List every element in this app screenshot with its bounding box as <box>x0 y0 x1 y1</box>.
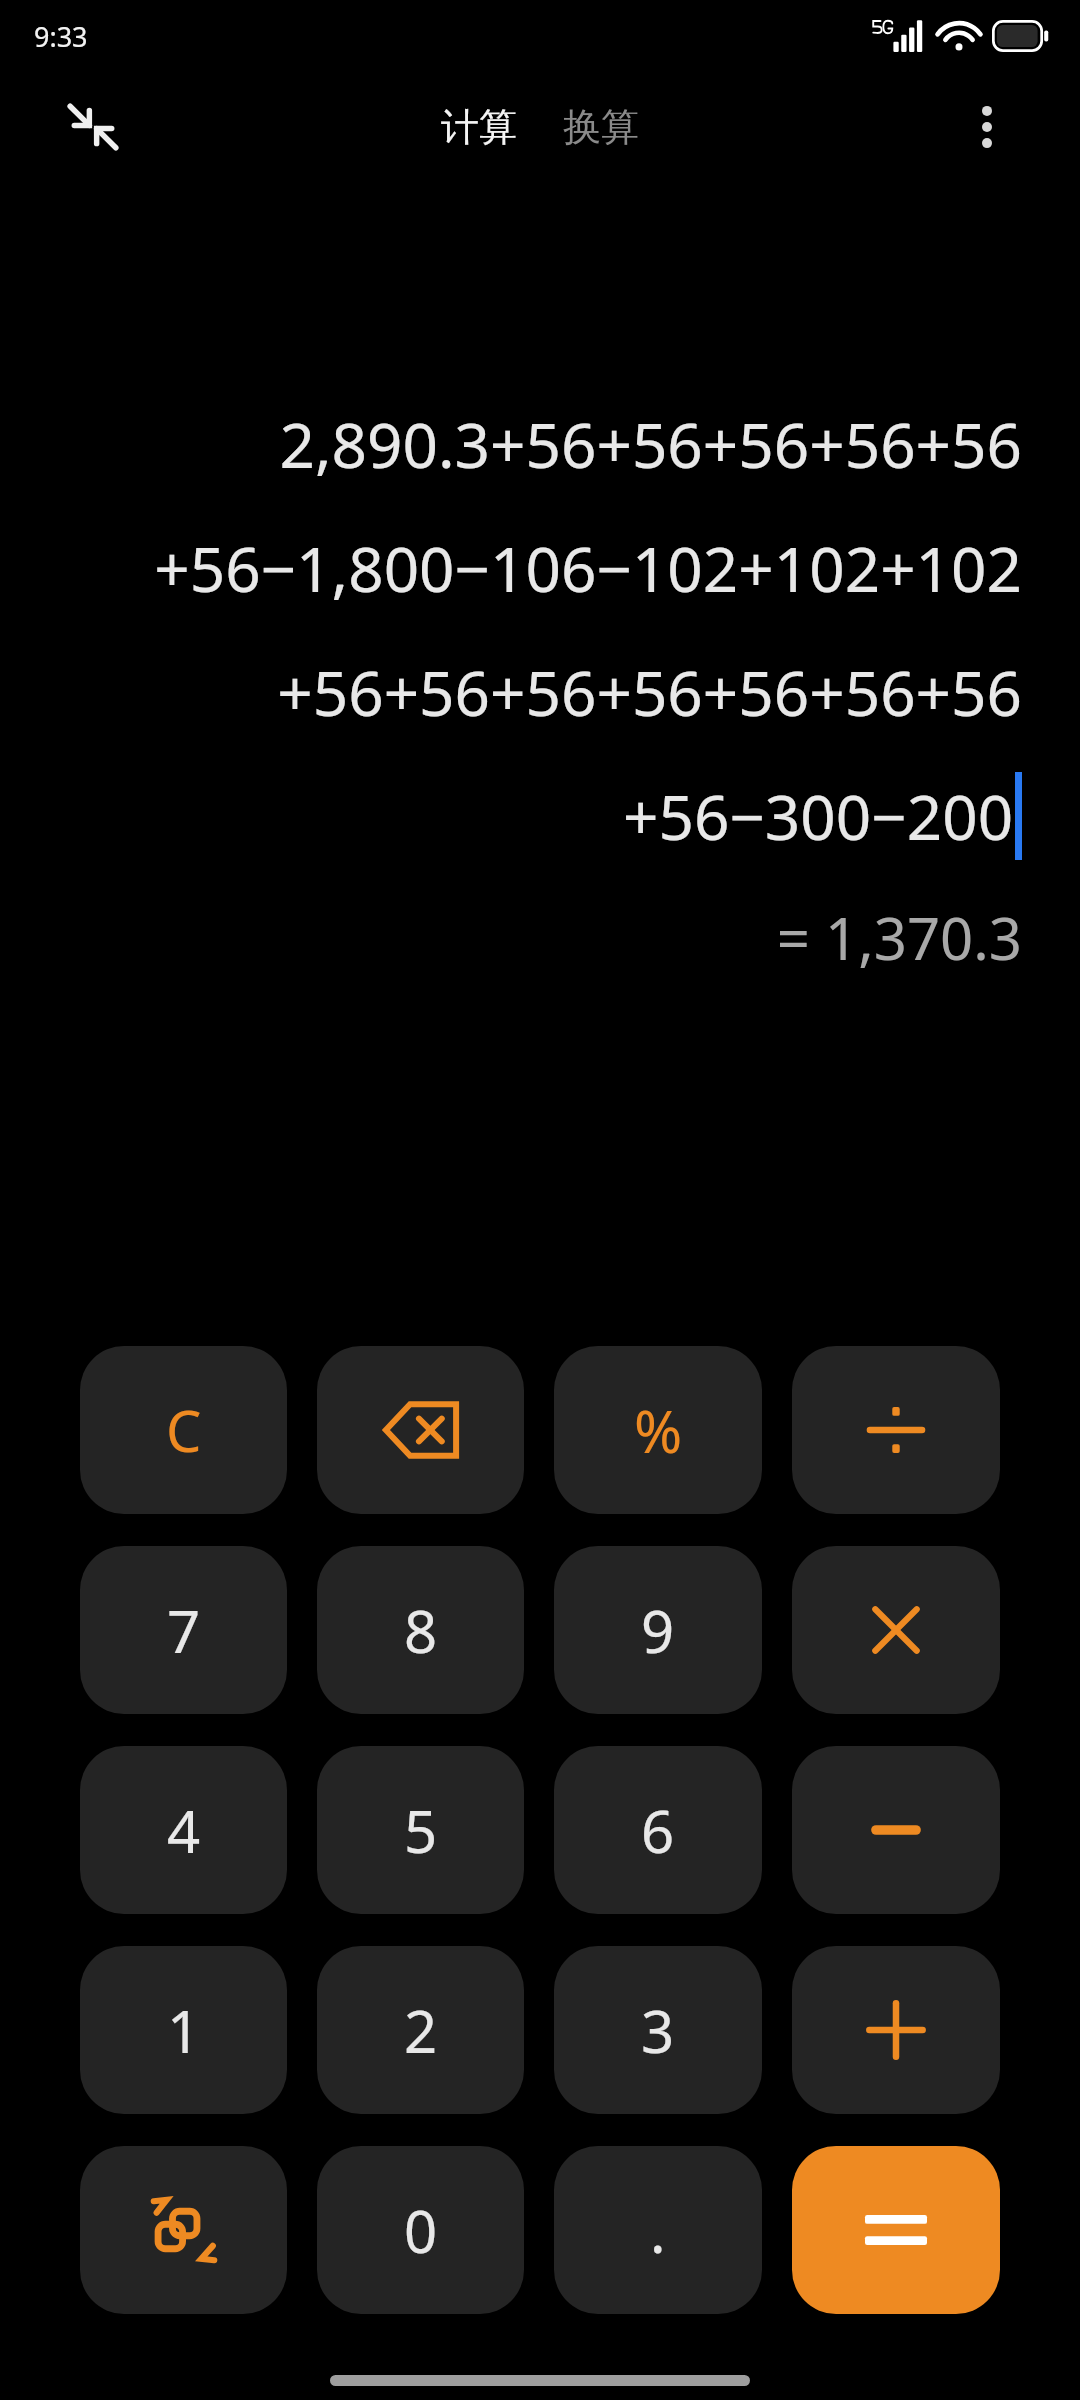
button[interactable]: 3 <box>554 1946 762 2114</box>
staticText: % <box>634 1391 683 1470</box>
staticText: +56−1,800−106−102+102+102 <box>0 526 1022 610</box>
button[interactable]: 0 <box>317 2146 524 2314</box>
staticText: 换算 <box>563 103 639 151</box>
staticText: C <box>166 1392 202 1468</box>
button[interactable]: More options <box>954 94 1020 160</box>
staticText: 0 <box>404 2191 438 2270</box>
button[interactable]: 4 <box>80 1746 287 1914</box>
button[interactable]: 2 <box>317 1946 524 2114</box>
button[interactable]: % <box>554 1346 762 1514</box>
staticText: 9:33 <box>34 18 88 55</box>
button[interactable]: 6 <box>554 1746 762 1914</box>
button[interactable]: 7 <box>80 1546 287 1714</box>
staticText: 2,890.3+56+56+56+56+56 <box>0 402 1022 486</box>
button[interactable]: 换算 <box>555 97 647 157</box>
staticText: 1 <box>167 1991 201 2070</box>
staticText: 4 <box>167 1791 201 1870</box>
button[interactable]: Divide <box>792 1346 1000 1514</box>
button[interactable]: 1 <box>80 1946 287 2114</box>
button[interactable]: 8 <box>317 1546 524 1714</box>
button[interactable]: 5 <box>317 1746 524 1914</box>
button[interactable]: Minus <box>792 1746 1000 1914</box>
staticText: 6 <box>641 1791 675 1870</box>
staticText: 7 <box>167 1591 201 1670</box>
button[interactable]: Collapse <box>60 94 126 160</box>
staticText: 8 <box>404 1591 438 1670</box>
button[interactable]: C <box>80 1346 287 1514</box>
button[interactable]: Equals <box>792 2146 1000 2314</box>
button[interactable]: Plus <box>792 1946 1000 2114</box>
button[interactable]: Multiply <box>792 1546 1000 1714</box>
button[interactable]: . <box>554 2146 762 2314</box>
button[interactable]: 9 <box>554 1546 762 1714</box>
staticText: +56−300−200 <box>623 774 1014 858</box>
staticText: 计算 <box>441 103 517 151</box>
staticText: 5 <box>404 1791 438 1870</box>
staticText: +56+56+56+56+56+56+56 <box>0 650 1022 734</box>
staticText: = 1,370.3 <box>0 898 1022 977</box>
staticText: 9 <box>641 1591 675 1670</box>
staticText: 3 <box>641 1991 675 2070</box>
staticText: . <box>650 2191 666 2270</box>
staticText: 2 <box>404 1991 438 2070</box>
button[interactable]: 计算 <box>433 97 525 157</box>
button[interactable]: Backspace <box>317 1346 524 1514</box>
button[interactable]: Scientific <box>80 2146 287 2314</box>
